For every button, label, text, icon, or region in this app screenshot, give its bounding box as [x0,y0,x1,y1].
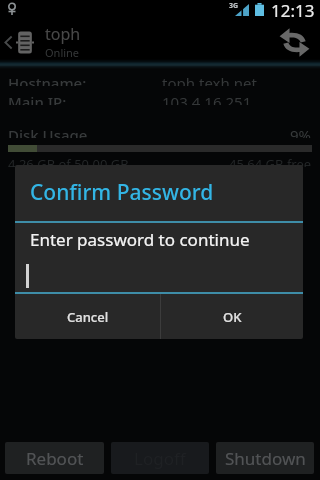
button[interactable]: Navigate up [0,19,36,65]
staticText: 9% [290,125,312,138]
staticText: Enter password to continue [30,228,250,251]
staticText: toph.texh.net [162,73,257,86]
staticText: Disk Usage [8,125,88,138]
staticText: Online [45,45,80,60]
staticText: 103.4.16.251 [162,92,252,105]
button[interactable]: Cancel [15,294,160,339]
button[interactable]: Refresh [268,19,320,65]
button[interactable]: OK [161,294,303,339]
other: Navigate up [4,35,13,50]
staticText: 12:13 [271,0,315,18]
staticText: 3G [229,1,239,11]
button[interactable]: Reboot [5,442,104,474]
button[interactable]: Shutdown [216,442,314,474]
staticText: Confirm Password [30,178,214,207]
staticText: Reboot [26,447,84,470]
staticText: OK [223,308,242,326]
staticText: toph [45,23,81,45]
staticText: Hostname: [8,73,87,86]
staticText: 45.64 GB free [229,155,312,167]
staticText: Main IP: [8,92,67,105]
staticText: 4.26 GB of 50.00 GB [8,155,129,167]
staticText: Shutdown [225,447,306,470]
staticText: Cancel [67,308,109,326]
